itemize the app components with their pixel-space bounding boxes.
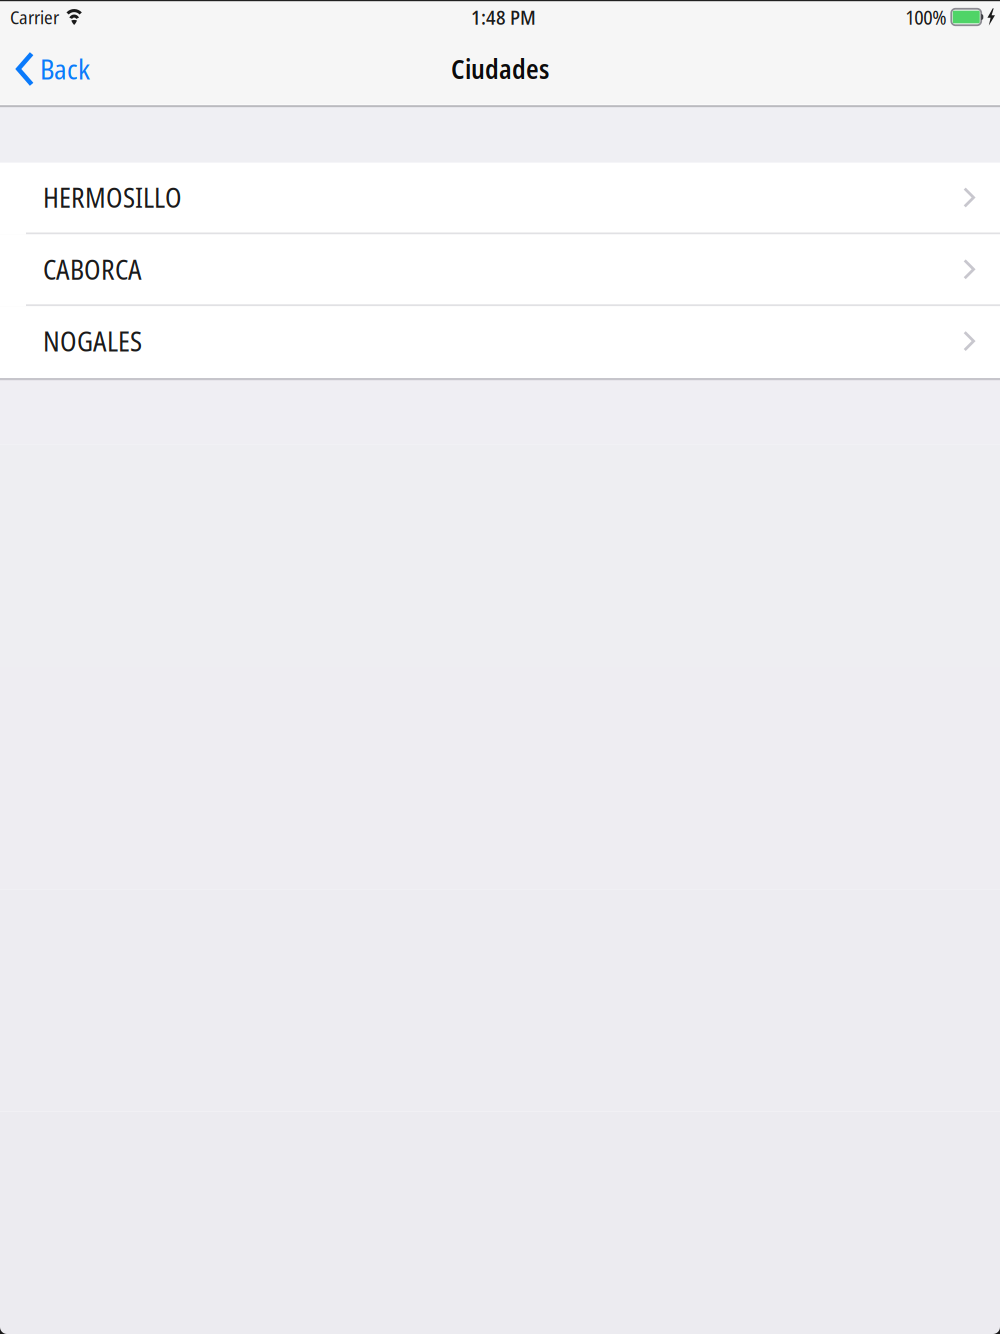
- staticText: NOGALES: [43, 323, 142, 359]
- button[interactable]: Back: [0, 34, 104, 104]
- staticText: Back: [40, 50, 90, 88]
- button[interactable]: HERMOSILLO: [0, 163, 1000, 234]
- staticText: Ciudades: [451, 51, 549, 87]
- staticText: CABORCA: [43, 251, 142, 287]
- staticText: Carrier: [10, 4, 59, 30]
- button[interactable]: CABORCA: [0, 234, 1000, 306]
- staticText: 100%: [905, 3, 946, 31]
- staticText: HERMOSILLO: [43, 179, 182, 216]
- button[interactable]: NOGALES: [0, 306, 1000, 378]
- staticText: 1:48 PM: [471, 3, 536, 31]
